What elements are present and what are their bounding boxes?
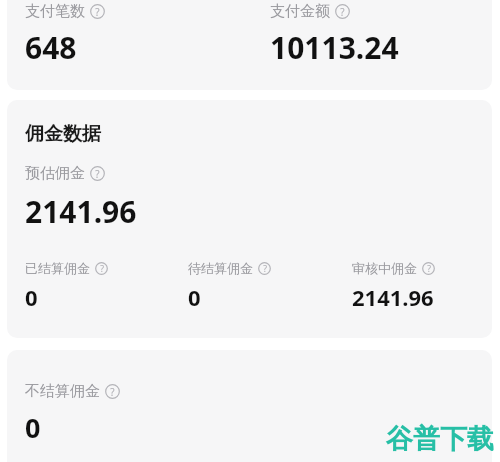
button[interactable]: 待结算佣金 说明	[258, 262, 271, 275]
button[interactable]: 支付笔数 说明	[90, 4, 105, 19]
staticText: ?	[263, 263, 267, 275]
button[interactable]: 支付笔数	[25, 2, 270, 68]
button[interactable]: 预估佣金 说明	[90, 166, 105, 181]
button[interactable]: 审核中佣金	[352, 260, 435, 312]
button[interactable]: 不结算佣金	[25, 382, 120, 446]
staticText: 已结算佣金	[25, 260, 90, 276]
staticText: 待结算佣金	[188, 260, 253, 276]
staticText: 支付金额	[270, 2, 330, 21]
button[interactable]: 不结算佣金 说明	[105, 384, 120, 399]
staticText: ?	[100, 263, 104, 275]
button[interactable]: 待结算佣金	[188, 260, 352, 312]
staticText: ?	[95, 5, 100, 18]
staticText: 预估佣金	[25, 164, 85, 183]
button[interactable]: 审核中佣金 说明	[422, 262, 435, 275]
staticText: 0	[25, 409, 41, 446]
staticText: 10113.24	[270, 27, 399, 68]
staticText: ?	[95, 167, 100, 180]
staticText: ?	[340, 5, 345, 18]
staticText: 2141.96	[25, 191, 137, 232]
staticText: 不结算佣金	[25, 382, 100, 401]
button[interactable]: 预估佣金	[25, 164, 137, 232]
staticText: 谷普下载	[386, 422, 494, 456]
staticText: 0	[25, 282, 38, 312]
staticText: 0	[188, 282, 201, 312]
button[interactable]: 支付金额	[270, 2, 399, 68]
staticText: 支付笔数	[25, 2, 85, 21]
staticText: 审核中佣金	[352, 260, 417, 276]
button[interactable]: 已结算佣金	[25, 260, 188, 312]
staticText: ?	[427, 263, 431, 275]
staticText: 648	[25, 27, 77, 68]
staticText: 2141.96	[352, 282, 434, 312]
button[interactable]: 已结算佣金 说明	[95, 262, 108, 275]
button[interactable]: 支付金额 说明	[335, 4, 350, 19]
staticText: ?	[110, 385, 115, 398]
button[interactable]: 佣金数据	[25, 122, 101, 146]
